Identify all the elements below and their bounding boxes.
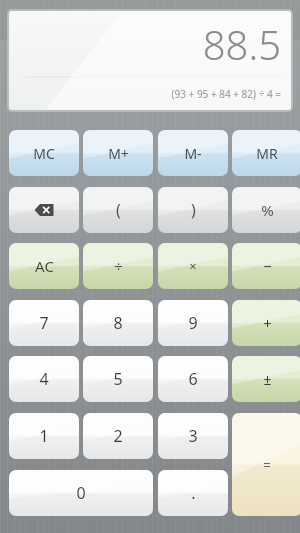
staticText: ) <box>191 199 196 221</box>
button[interactable]: + <box>232 300 300 346</box>
staticText: 5 <box>113 368 123 390</box>
staticText: AC <box>35 256 54 276</box>
button[interactable]: 0 <box>9 470 153 516</box>
button[interactable]: = <box>232 413 300 516</box>
button[interactable]: AC <box>9 243 79 289</box>
staticText: 2 <box>113 425 123 447</box>
button[interactable]: × <box>158 243 228 289</box>
staticText: 7 <box>39 312 49 334</box>
staticText: 0 <box>76 482 86 504</box>
staticText: M+ <box>108 144 129 163</box>
staticText: MC <box>33 144 55 163</box>
button[interactable]: % <box>232 187 300 233</box>
staticText: 9 <box>188 312 198 334</box>
button[interactable]: 6 <box>158 356 228 402</box>
staticText: MR <box>256 144 278 163</box>
staticText: . <box>191 482 196 504</box>
staticText: + <box>263 313 272 333</box>
button[interactable]: 8 <box>83 300 153 346</box>
button[interactable]: ± <box>232 356 300 402</box>
staticText: 3 <box>188 425 198 447</box>
staticText: = <box>263 456 271 474</box>
staticText: − <box>263 256 272 276</box>
staticText: ± <box>263 370 272 389</box>
staticText: 4 <box>39 368 49 390</box>
button[interactable]: ) <box>158 187 228 233</box>
staticText: M- <box>184 144 202 163</box>
button[interactable]: Backspace <box>9 187 79 233</box>
button[interactable]: 5 <box>83 356 153 402</box>
staticText: 1 <box>39 425 49 447</box>
button[interactable]: MC <box>9 130 79 176</box>
staticText: 8 <box>113 312 123 334</box>
staticText: % <box>261 200 274 220</box>
button[interactable]: ÷ <box>83 243 153 289</box>
staticText: ÷ <box>114 256 123 276</box>
button[interactable]: . <box>158 470 228 516</box>
staticText: ( <box>116 199 121 221</box>
button[interactable]: MR <box>232 130 300 176</box>
button[interactable]: 3 <box>158 413 228 459</box>
staticText: 88.5 <box>202 17 281 71</box>
staticText: (93 + 95 + 84 + 82) ÷ 4 = <box>171 87 281 101</box>
button[interactable]: 88.5 <box>9 11 291 110</box>
button[interactable]: 1 <box>9 413 79 459</box>
button[interactable]: M- <box>158 130 228 176</box>
button[interactable]: 9 <box>158 300 228 346</box>
button[interactable]: ( <box>83 187 153 233</box>
staticText: 6 <box>188 368 198 390</box>
staticText: × <box>189 257 197 275</box>
button[interactable]: M+ <box>83 130 153 176</box>
button[interactable]: − <box>232 243 300 289</box>
button[interactable]: 7 <box>9 300 79 346</box>
button[interactable]: 2 <box>83 413 153 459</box>
button[interactable]: 4 <box>9 356 79 402</box>
